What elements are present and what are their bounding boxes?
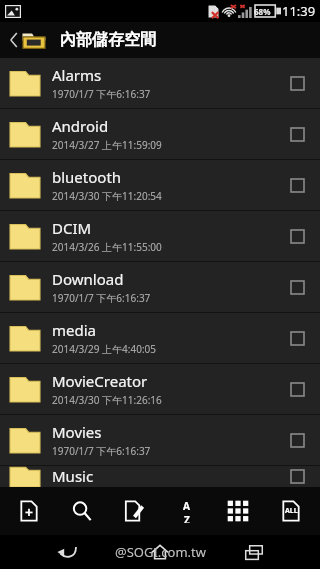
- staticText: 2014/3/26 上午11:55:00: [52, 240, 162, 254]
- staticText: Alarms: [52, 65, 102, 85]
- button[interactable]: media: [0, 313, 320, 363]
- staticText: 1970/1/7 下午6:16:37: [52, 291, 151, 305]
- button[interactable]: Back: [40, 535, 94, 569]
- button[interactable]: Music: [0, 466, 320, 487]
- staticText: Z: [184, 513, 190, 523]
- staticText: 內部儲存空間: [60, 30, 156, 50]
- staticText: 2014/3/30 下午11:26:16: [52, 393, 162, 407]
- staticText: 1970/1/7 下午6:16:37: [52, 87, 151, 101]
- staticText: bluetooth: [52, 167, 122, 187]
- staticText: DCIM: [52, 218, 92, 238]
- staticText: 2014/3/27 上午11:59:09: [52, 138, 162, 152]
- button[interactable]: Sort: [163, 489, 209, 533]
- button[interactable]: Recent apps: [227, 535, 281, 569]
- button[interactable]: Select Alarms: [282, 68, 312, 98]
- staticText: ALL: [285, 506, 298, 516]
- staticText: Android: [52, 116, 109, 136]
- button[interactable]: DCIM: [0, 211, 320, 261]
- button[interactable]: Android: [0, 109, 320, 159]
- button[interactable]: Alarms: [0, 58, 320, 108]
- button[interactable]: New file: [6, 489, 52, 533]
- button[interactable]: Movies: [0, 415, 320, 465]
- button[interactable]: Select DCIM: [282, 221, 312, 251]
- staticText: @SOGI.com.tw: [115, 543, 206, 561]
- button[interactable]: Download: [0, 262, 320, 312]
- button[interactable]: Select Download: [282, 272, 312, 302]
- staticText: MovieCreator: [52, 371, 148, 391]
- staticText: 11:39: [282, 2, 316, 20]
- button[interactable]: Select all: [268, 489, 314, 533]
- button[interactable]: Select bluetooth: [282, 170, 312, 200]
- staticText: Download: [52, 269, 124, 289]
- button[interactable]: Select media: [282, 323, 312, 353]
- staticText: A: [183, 499, 190, 513]
- staticText: Movies: [52, 422, 102, 442]
- button[interactable]: bluetooth: [0, 160, 320, 210]
- staticText: 2014/3/29 上午4:40:05: [52, 342, 157, 356]
- staticText: 68%: [254, 6, 271, 17]
- button[interactable]: MovieCreator: [0, 364, 320, 414]
- button[interactable]: Up: [6, 22, 50, 58]
- staticText: Music: [52, 466, 94, 486]
- button[interactable]: Grid view: [215, 489, 261, 533]
- staticText: media: [52, 320, 96, 340]
- staticText: 2014/3/30 下午11:20:54: [52, 189, 162, 203]
- button[interactable]: Home: [133, 535, 187, 569]
- button[interactable]: Select Music: [282, 466, 312, 487]
- button[interactable]: Search: [59, 489, 105, 533]
- button[interactable]: Select Movies: [282, 425, 312, 455]
- staticText: 1970/1/7 下午6:16:37: [52, 444, 151, 458]
- button[interactable]: Select MovieCreator: [282, 374, 312, 404]
- button[interactable]: Edit: [111, 489, 157, 533]
- button[interactable]: Select Android: [282, 119, 312, 149]
